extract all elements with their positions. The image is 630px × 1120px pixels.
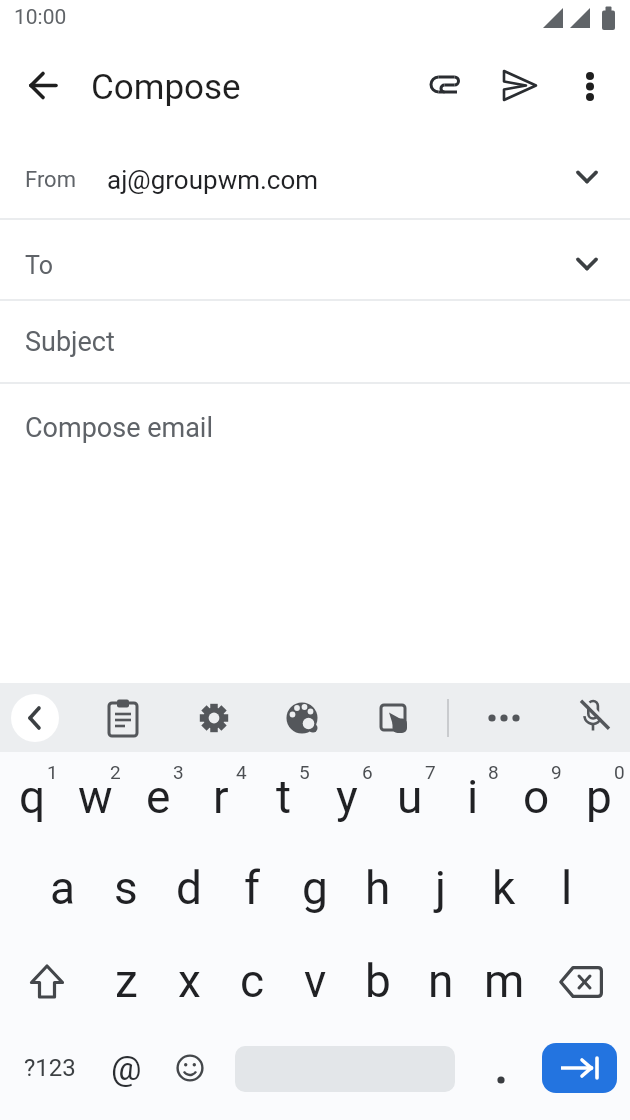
- button[interactable]: [424, 63, 468, 107]
- staticText: c: [240, 954, 265, 1008]
- button[interactable]: t: [253, 753, 315, 841]
- button[interactable]: ?123: [15, 1045, 85, 1091]
- staticText: 3: [173, 761, 184, 781]
- staticText: From: [25, 167, 76, 193]
- staticText: n: [428, 954, 454, 1008]
- staticText: w: [78, 770, 113, 824]
- staticText: a: [50, 861, 76, 915]
- staticText: 6: [362, 761, 373, 781]
- button[interactable]: [498, 63, 542, 107]
- staticText: l: [561, 861, 573, 915]
- button[interactable]: [571, 696, 615, 740]
- staticText: 8: [488, 761, 499, 781]
- button[interactable]: Subject: [0, 301, 630, 382]
- staticText: Subject: [25, 326, 115, 358]
- button[interactable]: From: [0, 137, 630, 218]
- button[interactable]: h: [347, 844, 409, 932]
- button[interactable]: To: [0, 220, 630, 299]
- button[interactable]: [192, 696, 236, 740]
- staticText: y: [336, 770, 358, 824]
- staticText: Compose: [91, 67, 241, 108]
- button[interactable]: g: [284, 844, 346, 932]
- staticText: z: [115, 954, 138, 1008]
- staticText: t: [276, 770, 292, 824]
- staticText: m: [484, 954, 525, 1008]
- staticText: q: [19, 770, 46, 824]
- staticText: 2: [110, 761, 121, 781]
- staticText: 10:00: [14, 5, 67, 30]
- button[interactable]: u: [379, 753, 441, 841]
- staticText: Compose email: [25, 412, 213, 444]
- button[interactable]: y: [316, 753, 378, 841]
- button[interactable]: c: [221, 937, 283, 1025]
- staticText: ?123: [24, 1054, 76, 1082]
- button[interactable]: n: [410, 937, 472, 1025]
- button[interactable]: [11, 694, 59, 742]
- button[interactable]: j: [410, 844, 472, 932]
- button[interactable]: [280, 696, 324, 740]
- button[interactable]: @: [101, 1045, 151, 1091]
- button[interactable]: k: [473, 844, 535, 932]
- staticText: x: [178, 954, 201, 1008]
- button[interactable]: m: [473, 937, 535, 1025]
- staticText: 1: [47, 761, 58, 781]
- button[interactable]: o: [505, 753, 567, 841]
- staticText: i: [467, 770, 479, 824]
- staticText: p: [586, 770, 612, 824]
- staticText: e: [146, 770, 171, 824]
- button[interactable]: [101, 696, 145, 740]
- button[interactable]: [14, 948, 80, 1016]
- staticText: f: [244, 861, 260, 915]
- staticText: k: [492, 861, 516, 915]
- button[interactable]: l: [536, 844, 598, 932]
- button[interactable]: [546, 948, 616, 1016]
- staticText: o: [523, 770, 550, 824]
- button[interactable]: d: [158, 844, 220, 932]
- button[interactable]: [370, 696, 414, 740]
- button[interactable]: i: [442, 753, 504, 841]
- staticText: aj@groupwm.com: [107, 165, 319, 195]
- staticText: g: [302, 861, 328, 915]
- staticText: s: [114, 861, 138, 915]
- button[interactable]: f: [221, 844, 283, 932]
- button[interactable]: [481, 1046, 521, 1092]
- button[interactable]: v: [284, 937, 346, 1025]
- button[interactable]: Compose email: [0, 384, 630, 683]
- staticText: 0: [614, 761, 625, 781]
- button[interactable]: s: [95, 844, 157, 932]
- staticText: 4: [236, 761, 247, 781]
- button[interactable]: q: [1, 753, 63, 841]
- staticText: To: [25, 251, 53, 280]
- button[interactable]: b: [347, 937, 409, 1025]
- staticText: d: [176, 861, 202, 915]
- button[interactable]: [542, 1043, 617, 1093]
- button[interactable]: [570, 63, 614, 107]
- button[interactable]: r: [190, 753, 252, 841]
- staticText: b: [365, 954, 391, 1008]
- staticText: v: [304, 954, 327, 1008]
- button[interactable]: e: [127, 753, 189, 841]
- staticText: 9: [551, 761, 562, 781]
- staticText: r: [213, 770, 229, 824]
- staticText: 7: [425, 761, 436, 781]
- button[interactable]: [482, 696, 526, 740]
- staticText: 5: [299, 761, 310, 781]
- button[interactable]: a: [32, 844, 94, 932]
- button[interactable]: [166, 1045, 214, 1091]
- staticText: j: [435, 861, 447, 915]
- staticText: @: [111, 1048, 142, 1088]
- staticText: u: [397, 770, 423, 824]
- button[interactable]: [23, 65, 65, 107]
- button[interactable]: w: [64, 753, 126, 841]
- button[interactable]: p: [568, 753, 630, 841]
- staticText: h: [365, 861, 391, 915]
- button[interactable]: x: [158, 937, 220, 1025]
- button[interactable]: z: [95, 937, 157, 1025]
